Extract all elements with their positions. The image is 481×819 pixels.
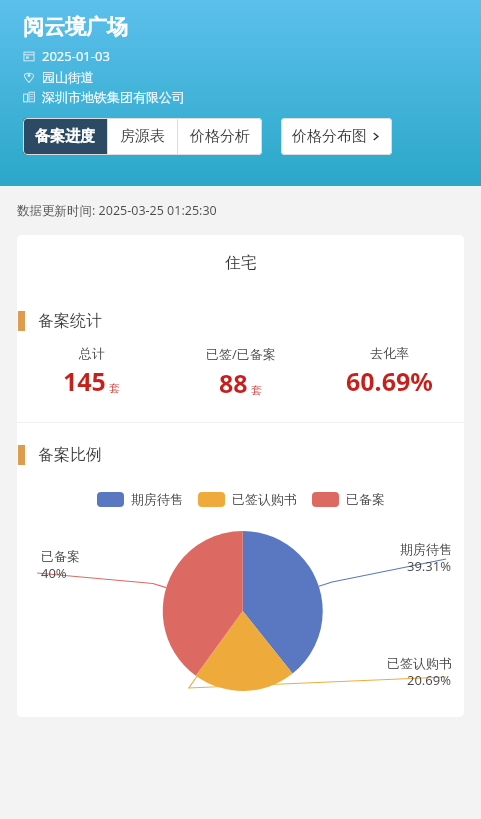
staticText: 39.31% — [407, 557, 452, 575]
staticText: 备案统计 — [38, 311, 102, 331]
staticText: 期房待售 — [400, 541, 452, 557]
staticText: 已签认购书 — [232, 491, 297, 507]
staticText: 价格分析 — [190, 127, 250, 146]
button[interactable]: 价格分析 — [178, 118, 262, 155]
staticText: 备案比例 — [38, 445, 102, 465]
staticText: 20.69% — [407, 671, 452, 689]
staticText: 已备案 — [346, 491, 385, 507]
button[interactable]: 价格分布图 — [281, 118, 392, 155]
staticText: 去化率 — [370, 345, 409, 361]
staticText: 价格分布图 — [292, 127, 367, 146]
staticText: 园山街道 — [42, 69, 94, 85]
staticText: 已备案 — [41, 548, 80, 564]
staticText: 阅云境广场 — [23, 14, 128, 40]
staticText: 已签/已备案 — [206, 345, 276, 363]
staticText: 房源表 — [120, 127, 165, 146]
staticText: 套 — [251, 383, 262, 397]
staticText: 备案进度 — [35, 127, 95, 146]
staticText: 2025-01-03 — [42, 47, 110, 65]
staticText: 住宅 — [225, 253, 257, 273]
staticText: 60.69% — [346, 364, 433, 398]
staticText: 期房待售 — [131, 491, 183, 507]
button[interactable]: 房源表 — [108, 118, 177, 155]
button[interactable]: 备案进度 — [23, 118, 107, 155]
staticText: 40% — [41, 564, 67, 582]
staticText: 深圳市地铁集团有限公司 — [42, 89, 185, 105]
staticText: 数据更新时间: 2025-03-25 01:25:30 — [17, 202, 217, 219]
staticText: 套 — [109, 381, 120, 395]
staticText: 已签认购书 — [387, 655, 452, 671]
staticText: 总计 — [79, 345, 105, 361]
staticText: 145 — [63, 364, 106, 398]
staticText: 88 — [219, 366, 248, 400]
